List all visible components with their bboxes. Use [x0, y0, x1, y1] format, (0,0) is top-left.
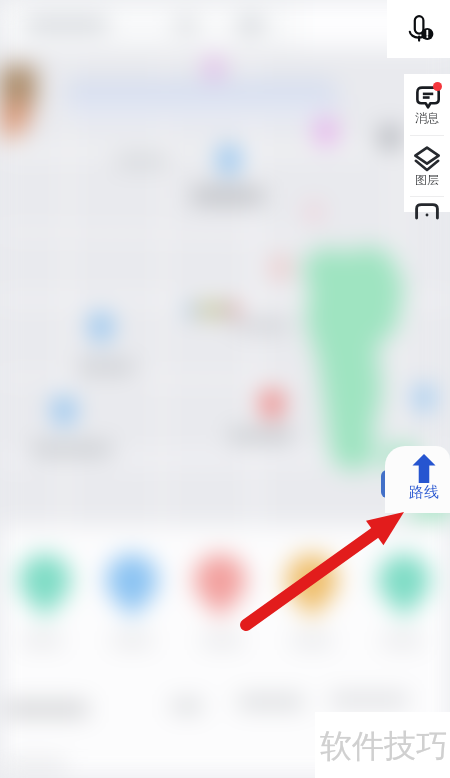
button[interactable]: Voice search — [387, 0, 450, 58]
staticText: 软件技巧 — [320, 726, 448, 766]
button[interactable]: 消息 — [404, 74, 450, 135]
staticText: 路线 — [409, 483, 439, 502]
button[interactable]: 路线 — [385, 446, 450, 513]
button[interactable]: Navigation — [404, 197, 450, 212]
staticText: 图层 — [415, 172, 439, 187]
staticText: 消息 — [415, 110, 439, 125]
button[interactable]: 图层 — [404, 136, 450, 196]
